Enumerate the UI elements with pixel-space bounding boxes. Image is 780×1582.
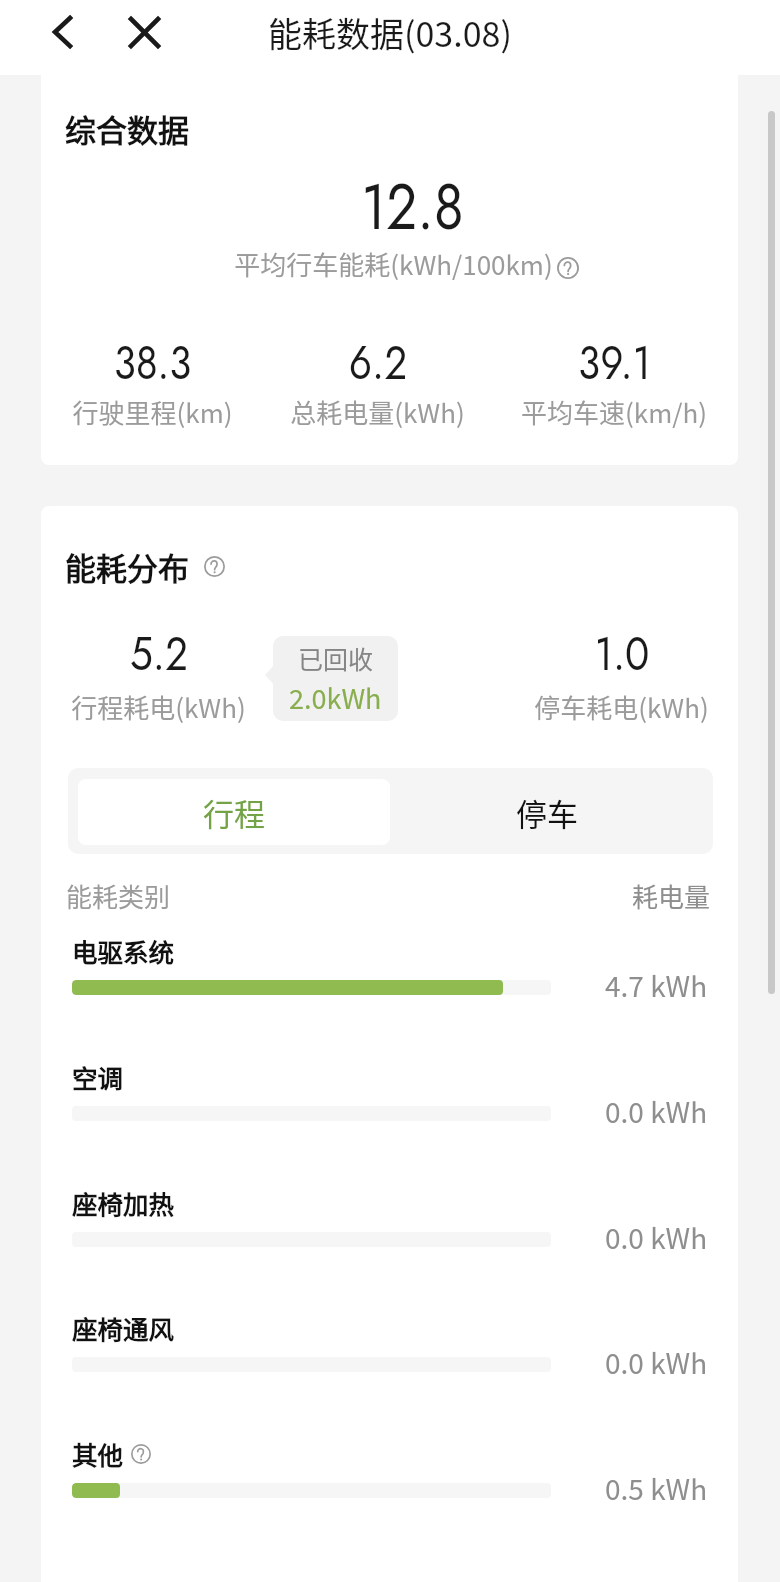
staticText: 行驶里程(km) bbox=[72, 393, 233, 431]
staticText: 5.2 bbox=[130, 620, 188, 688]
staticText: 总耗电量(kWh) bbox=[290, 393, 465, 431]
staticText: 平均行车能耗(kWh/100km) bbox=[234, 245, 553, 283]
staticText: 0.5 kWh bbox=[605, 1468, 708, 1509]
button[interactable]: 停车 bbox=[390, 779, 703, 845]
staticText: 能耗类别 bbox=[66, 877, 171, 915]
staticText: 4.7 kWh bbox=[605, 965, 708, 1006]
staticText: 12.8 bbox=[113, 161, 712, 253]
staticText: 平均车速(km/h) bbox=[521, 393, 707, 431]
staticText: 0.0 kWh bbox=[605, 1342, 708, 1383]
staticText: 停车 bbox=[516, 790, 578, 835]
staticText: 空调 bbox=[72, 1058, 124, 1095]
staticText: 39.1 bbox=[578, 329, 651, 397]
button[interactable]: About other consumption bbox=[131, 1444, 151, 1464]
button[interactable]: 行程 bbox=[78, 779, 390, 845]
staticText: 停车耗电(kWh) bbox=[534, 688, 709, 726]
staticText: 0.0 kWh bbox=[605, 1217, 708, 1258]
button[interactable]: More information bbox=[557, 257, 579, 279]
button[interactable]: 其他 bbox=[41, 1420, 738, 1530]
button[interactable]: 座椅加热 bbox=[41, 1169, 738, 1279]
button[interactable]: Close bbox=[121, 9, 167, 55]
staticText: 已回收 bbox=[298, 640, 374, 676]
staticText: 能耗数据(03.08) bbox=[268, 8, 512, 57]
button[interactable]: 座椅通风 bbox=[41, 1294, 738, 1404]
staticText: 座椅加热 bbox=[72, 1184, 175, 1221]
staticText: 38.3 bbox=[113, 329, 192, 397]
staticText: 其他 bbox=[72, 1435, 124, 1472]
staticText: 行程 bbox=[203, 790, 265, 835]
staticText: 能耗分布 bbox=[65, 544, 189, 589]
staticText: 耗电量 bbox=[632, 877, 711, 915]
staticText: 电驱系统 bbox=[72, 932, 175, 969]
button[interactable]: 电驱系统 bbox=[41, 917, 738, 1027]
button[interactable]: 空调 bbox=[41, 1043, 738, 1153]
staticText: 2.0kWh bbox=[289, 678, 382, 717]
staticText: 座椅通风 bbox=[72, 1309, 175, 1346]
staticText: 1.0 bbox=[594, 620, 649, 688]
staticText: 综合数据 bbox=[65, 106, 189, 151]
staticText: 行程耗电(kWh) bbox=[71, 688, 246, 726]
staticText: 6.2 bbox=[349, 329, 407, 397]
staticText: 0.0 kWh bbox=[605, 1091, 708, 1132]
button[interactable]: More information bbox=[204, 556, 225, 577]
button[interactable]: Back bbox=[39, 9, 85, 55]
